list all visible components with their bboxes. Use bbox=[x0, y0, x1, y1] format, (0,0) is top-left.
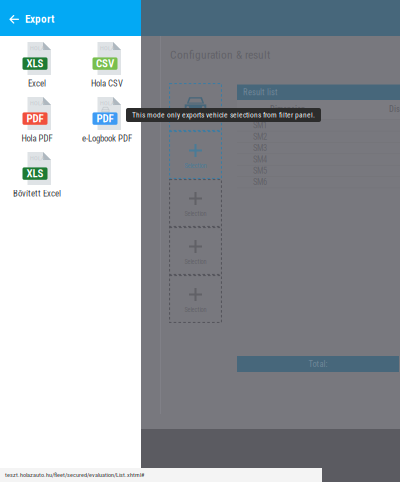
staticText: SM6 bbox=[253, 177, 267, 187]
button[interactable]: Export bbox=[0, 0, 141, 36]
staticText: PDF bbox=[26, 112, 43, 125]
staticText: HOLA bbox=[30, 45, 45, 52]
staticText: CSV bbox=[96, 57, 114, 70]
button[interactable]: HOLA bbox=[0, 38, 70, 93]
button[interactable]: HOLA bbox=[70, 93, 140, 148]
staticText: Hola CSV bbox=[91, 78, 123, 89]
staticText: XLS bbox=[26, 167, 43, 180]
staticText: Hola PDF bbox=[21, 133, 52, 144]
staticText: e-Logbook PDF bbox=[82, 133, 132, 144]
staticText: HOLA bbox=[30, 155, 45, 162]
button[interactable]: HOLA bbox=[70, 38, 140, 93]
staticText: Dis bbox=[389, 104, 400, 114]
button[interactable]: HOLA bbox=[0, 148, 70, 203]
staticText: SM2 bbox=[253, 132, 267, 142]
staticText: Selection bbox=[184, 210, 206, 217]
staticText: Export bbox=[25, 12, 54, 25]
staticText: PDF bbox=[96, 112, 113, 125]
staticText: HOLA bbox=[100, 100, 115, 107]
staticText: Configuration & result bbox=[170, 48, 270, 61]
staticText: SM5 bbox=[253, 166, 267, 176]
staticText: Total: bbox=[308, 359, 327, 369]
staticText: Selection bbox=[184, 306, 206, 313]
staticText: HOLA bbox=[30, 100, 45, 107]
staticText: SM3 bbox=[253, 143, 267, 153]
staticText: Bővített Excel bbox=[13, 188, 61, 199]
staticText: SM4 bbox=[253, 154, 267, 164]
button[interactable]: HOLA bbox=[0, 93, 70, 148]
staticText: This mode only exports vehicle selection… bbox=[132, 111, 315, 119]
staticText: XLS bbox=[26, 57, 43, 70]
staticText: SM1 bbox=[253, 120, 267, 130]
staticText: Result list bbox=[243, 87, 278, 97]
staticText: HOLA bbox=[100, 45, 115, 52]
staticText: Dimension bbox=[270, 104, 305, 114]
staticText: teszt.holazauto.hu/fleet/secured/evaluat… bbox=[5, 471, 144, 479]
staticText: Selection bbox=[184, 162, 206, 169]
staticText: Selection bbox=[184, 258, 206, 265]
staticText: Excel bbox=[28, 78, 46, 89]
